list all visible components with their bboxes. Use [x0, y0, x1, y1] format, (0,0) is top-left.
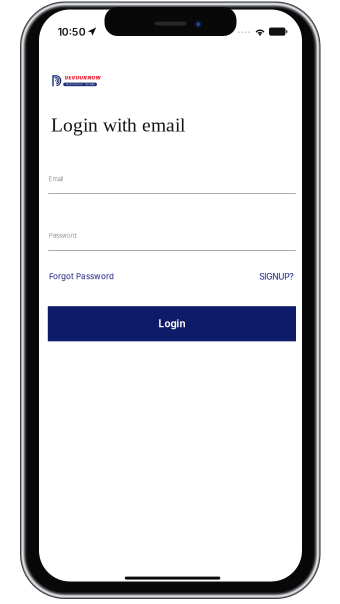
staticText: DEVOUR NOW [64, 75, 100, 81]
button[interactable]: Login [48, 306, 296, 341]
staticText: SIGNUP? [259, 272, 293, 282]
staticText: Login [158, 318, 185, 330]
staticText: 10:50 [58, 26, 86, 38]
staticText: Login with email [51, 114, 185, 136]
button[interactable]: SIGNUP? [259, 272, 293, 282]
staticText: Password [49, 232, 77, 239]
button[interactable]: Forgot Password [49, 272, 114, 281]
staticText: DELICIOUS FOOD · DELIVERED [66, 83, 95, 86]
staticText: Email [49, 175, 63, 183]
staticText: Forgot Password [49, 272, 114, 281]
